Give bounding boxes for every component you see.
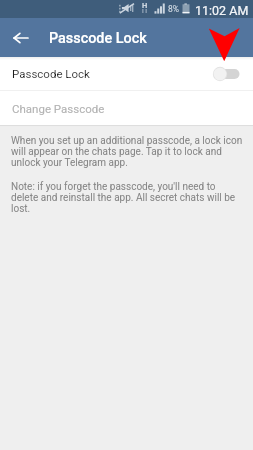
staticText: When you set up an additional passcode, … [11, 135, 244, 168]
button[interactable]: Passcode Lock toggle [213, 64, 240, 84]
button[interactable]: Change Passcode [0, 91, 253, 125]
staticText: 8% [168, 4, 180, 14]
staticText: 11:02 AM [195, 3, 249, 18]
staticText: Note: if you forget the passcode, you'll… [11, 181, 244, 214]
staticText: H [142, 1, 148, 10]
staticText: Passcode Lock [49, 30, 147, 47]
staticText: Change Passcode [12, 102, 105, 115]
staticText: Passcode Lock [12, 67, 90, 80]
button[interactable]: Back [8, 26, 32, 50]
button[interactable]: Passcode Lock [0, 57, 253, 90]
